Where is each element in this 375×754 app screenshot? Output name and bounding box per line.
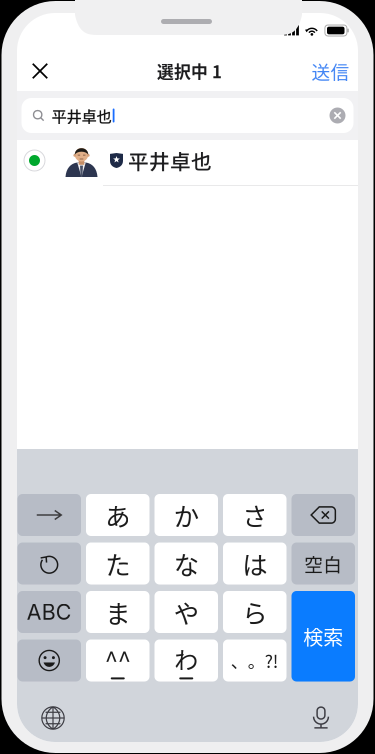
staticText: な [174, 545, 199, 582]
button[interactable]: 音声入力 [298, 696, 344, 740]
button[interactable]: 空白 [291, 542, 355, 584]
staticText: 、。?! [231, 648, 279, 673]
button[interactable]: は [223, 542, 286, 584]
staticText: か [174, 497, 199, 533]
staticText: や [174, 594, 199, 630]
button[interactable]: な [154, 542, 218, 584]
staticText: わ [174, 642, 198, 676]
button[interactable]: 検索 [291, 591, 355, 681]
button[interactable] [291, 494, 355, 536]
button[interactable]: 次のキーボード [30, 696, 76, 740]
button[interactable]: クリア [323, 100, 351, 130]
staticText: ^^ [105, 642, 131, 676]
button[interactable]: ら [223, 591, 286, 633]
button[interactable]: 、。?! [223, 639, 286, 681]
button[interactable] [17, 542, 81, 584]
staticText: 平井卓也 [51, 104, 111, 127]
button[interactable]: ABC [17, 591, 81, 633]
button[interactable]: ま [86, 591, 149, 633]
staticText: ABC [27, 599, 72, 625]
staticText: ら [242, 594, 267, 630]
button[interactable]: さ [223, 494, 286, 536]
staticText: ま [105, 594, 130, 630]
button[interactable]: や [154, 591, 218, 633]
staticText: 選択中 1 [157, 59, 222, 83]
staticText: た [105, 545, 130, 582]
button[interactable] [17, 494, 81, 536]
staticText: は [242, 545, 267, 582]
button[interactable]: あ [86, 494, 149, 536]
staticText: 検索 [303, 622, 343, 651]
button[interactable]: 平井卓也 [17, 136, 358, 186]
staticText: あ [105, 497, 130, 533]
staticText: 空白 [304, 550, 342, 577]
button[interactable]: 送信 [306, 49, 354, 93]
button[interactable]: わ [154, 639, 218, 681]
button[interactable] [17, 639, 81, 681]
button[interactable]: 閉じる [18, 49, 62, 93]
button[interactable]: ^^ [86, 639, 149, 681]
staticText: さ [242, 497, 267, 533]
staticText: 送信 [311, 57, 349, 84]
staticText: 平井卓也 [128, 145, 212, 175]
button[interactable]: た [86, 542, 149, 584]
button[interactable]: か [154, 494, 218, 536]
